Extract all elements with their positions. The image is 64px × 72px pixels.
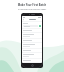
button[interactable] bbox=[22, 59, 42, 62]
button[interactable]: Add bbox=[23, 25, 41, 27]
button[interactable] bbox=[22, 53, 42, 58]
button[interactable] bbox=[22, 49, 42, 52]
staticText: in Minutes and Discover Ideas bbox=[3, 8, 61, 11]
button[interactable]: Back bbox=[22, 18, 42, 21]
button[interactable]: Home bbox=[31, 64, 34, 67]
staticText: Make Your First Batch bbox=[3, 3, 61, 7]
button[interactable] bbox=[22, 33, 42, 38]
button[interactable] bbox=[22, 43, 42, 48]
button[interactable] bbox=[22, 29, 42, 32]
button[interactable]: Add bbox=[39, 25, 41, 27]
button[interactable] bbox=[22, 39, 42, 42]
